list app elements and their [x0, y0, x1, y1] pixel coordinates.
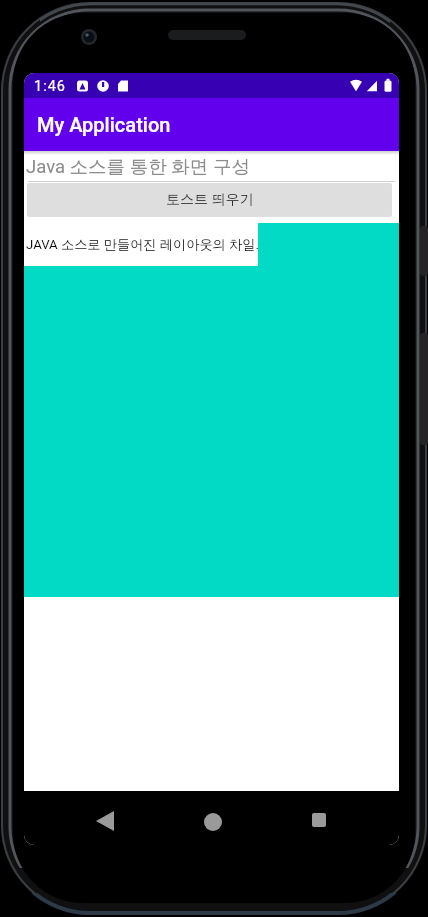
button[interactable] — [93, 809, 117, 833]
staticText: 1:46 — [34, 78, 66, 95]
staticText: 토스트 띄우기 — [166, 191, 254, 209]
staticText: My Application — [37, 113, 171, 136]
staticText: JAVA 소스로 만들어진 레이아웃의 차일드 — [26, 236, 258, 253]
button[interactable] — [307, 808, 331, 832]
button[interactable]: JAVA 소스로 만들어진 레이아웃의 차일드 — [24, 223, 258, 266]
staticText: Java 소스를 통한 화면 구성 — [26, 155, 250, 178]
button[interactable]: Java 소스를 통한 화면 구성 — [26, 153, 356, 179]
button[interactable] — [200, 809, 225, 834]
button[interactable]: 토스트 띄우기 — [27, 183, 392, 217]
button[interactable]: My Application — [24, 98, 399, 151]
